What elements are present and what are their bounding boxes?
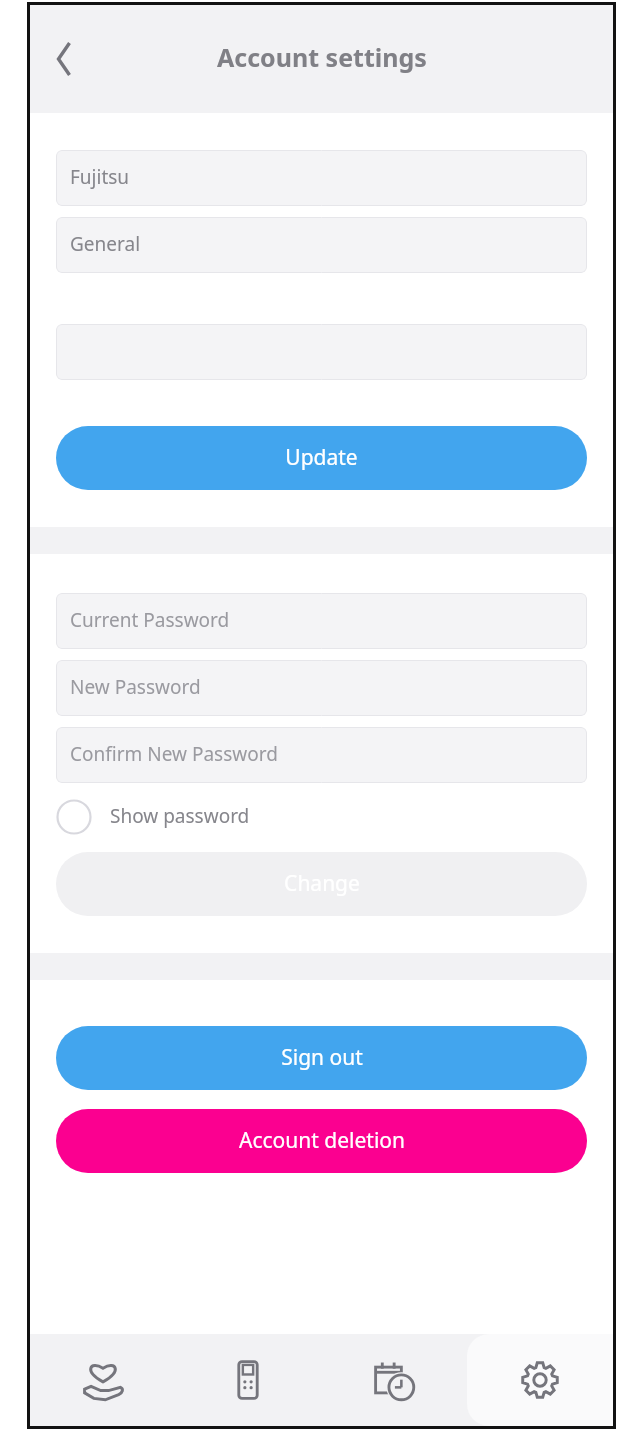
staticText: New Password <box>70 674 201 700</box>
button[interactable]: Home <box>30 1334 175 1426</box>
staticText: Confirm New Password <box>70 741 278 767</box>
staticText: Fujitsu <box>70 164 130 190</box>
button[interactable]: Update <box>56 426 587 490</box>
staticText: Account deletion <box>239 1126 405 1155</box>
button[interactable]: Show password <box>56 792 587 842</box>
button[interactable]: Account deletion <box>56 1109 587 1173</box>
button[interactable]: General <box>56 217 587 273</box>
button[interactable]: Current Password <box>56 593 587 649</box>
button[interactable]: Sign out <box>56 1026 587 1090</box>
staticText: General <box>70 231 141 257</box>
staticText: Update <box>285 443 358 472</box>
button[interactable]: Fujitsu <box>56 150 587 206</box>
button[interactable]: Settings <box>467 1334 613 1426</box>
button[interactable]: New Password <box>56 660 587 716</box>
button[interactable]: Confirm New Password <box>56 727 587 783</box>
staticText: Sign out <box>281 1043 363 1072</box>
staticText: Show password <box>110 803 250 829</box>
button[interactable]: Back <box>36 31 92 87</box>
button[interactable]: Schedule <box>321 1334 467 1426</box>
button[interactable]: Remote <box>175 1334 321 1426</box>
staticText: Change <box>284 869 360 898</box>
staticText: Current Password <box>70 607 230 633</box>
staticText: Account settings <box>217 40 427 74</box>
